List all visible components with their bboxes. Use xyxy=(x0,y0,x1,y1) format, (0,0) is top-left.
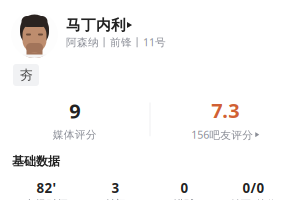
staticText: 82' xyxy=(36,179,56,197)
button[interactable]: 马丁内利 xyxy=(66,16,166,49)
staticText: 出场时间 xyxy=(24,197,68,200)
button[interactable]: 夯 xyxy=(13,64,39,86)
staticText: 156吧友评分 xyxy=(191,128,253,142)
staticText: 媒体评分 xyxy=(53,128,97,141)
staticText: 进球 xyxy=(173,197,195,200)
staticText: 7.3 xyxy=(211,97,239,124)
staticText: 3 xyxy=(111,179,119,197)
staticText: 马丁内利 xyxy=(66,16,126,34)
staticText: 基础数据 xyxy=(12,154,60,169)
button[interactable]: 球员头像 xyxy=(11,11,58,58)
staticText: 夯 xyxy=(19,67,32,83)
staticText: 0 xyxy=(180,179,188,197)
staticText: 射正/越位 xyxy=(229,197,277,200)
staticText: 9 xyxy=(69,97,80,124)
staticText: 阿森纳丨前锋丨11号 xyxy=(66,35,166,49)
button[interactable]: 7.3 xyxy=(150,97,300,142)
staticText: 射门 xyxy=(104,197,126,200)
staticText: 0/0 xyxy=(242,179,264,197)
